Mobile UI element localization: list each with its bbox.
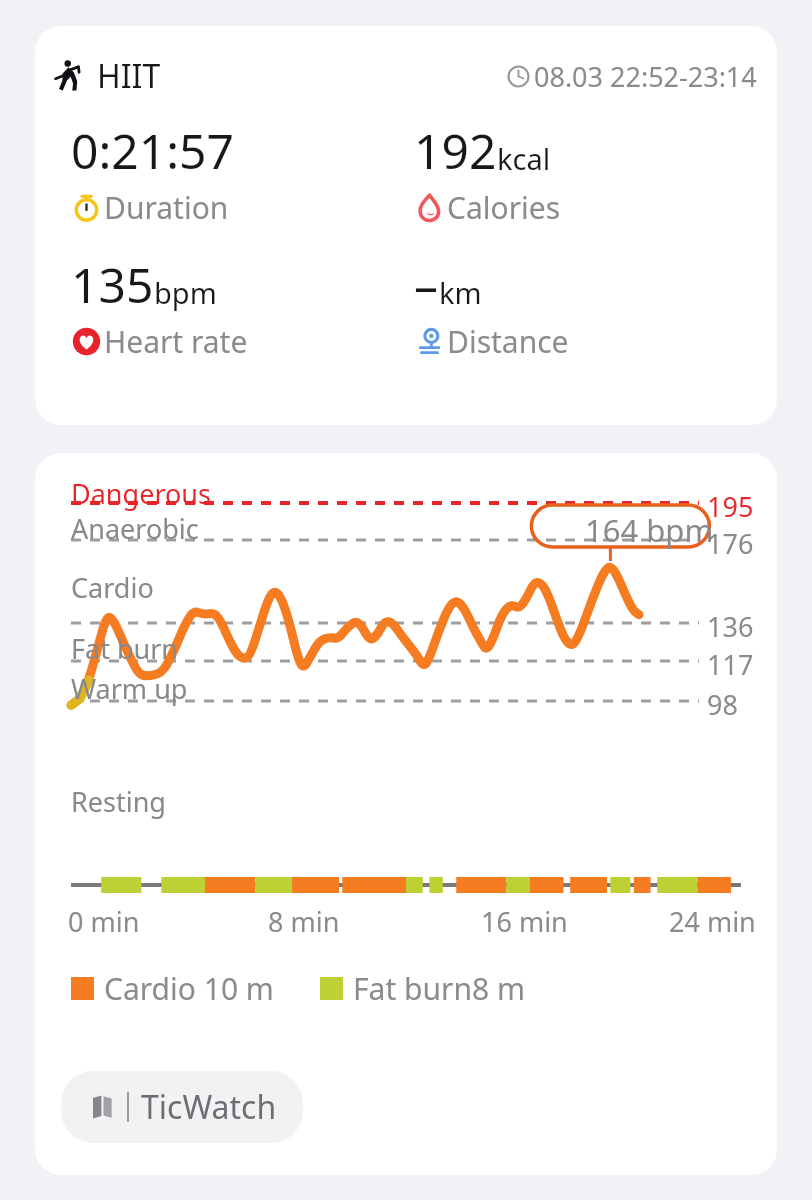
staticText: Calories — [447, 187, 561, 228]
staticText: Warm up — [71, 670, 188, 707]
button[interactable]: TicWatch — [61, 1071, 303, 1143]
staticText: 08.03 22:52-23:14 — [534, 58, 757, 95]
staticText: 16 min — [481, 903, 568, 940]
staticText: 192 — [414, 118, 497, 183]
staticText: 24 min — [669, 903, 756, 940]
other: HIIT workout — [51, 57, 89, 95]
staticText: Duration — [104, 187, 229, 228]
staticText: Distance — [447, 321, 569, 362]
staticText: Fat burn8 m — [353, 968, 525, 1009]
staticText: 164 bpm — [585, 509, 714, 551]
button[interactable]: HIIT workout — [35, 26, 777, 425]
staticText: Cardio — [71, 569, 154, 606]
staticText: bpm — [154, 273, 217, 312]
staticText: 0 min — [68, 903, 140, 940]
staticText: – — [414, 252, 439, 317]
button[interactable]: Dangerous — [35, 453, 777, 1175]
staticText: 117 — [707, 646, 754, 683]
button[interactable]: 0:21:57 — [71, 118, 235, 228]
button[interactable]: 192 — [414, 118, 561, 228]
staticText: kcal — [497, 139, 551, 178]
staticText: 135 — [71, 252, 154, 317]
staticText: Fat burn — [71, 630, 179, 667]
staticText: 98 — [707, 686, 738, 723]
button[interactable]: – — [414, 252, 569, 362]
staticText: HIIT — [97, 54, 161, 98]
staticText: 176 — [707, 525, 754, 562]
staticText: 195 — [707, 488, 754, 525]
button[interactable]: 135 — [71, 252, 248, 362]
staticText: Dangerous — [71, 475, 211, 512]
staticText: Cardio 10 m — [104, 968, 274, 1009]
staticText: Anaerobic — [71, 510, 199, 547]
staticText: Heart rate — [104, 321, 248, 362]
staticText: TicWatch — [141, 1085, 277, 1129]
staticText: 0:21:57 — [71, 118, 235, 183]
staticText: 8 min — [268, 903, 340, 940]
staticText: Resting — [71, 783, 166, 820]
staticText: km — [439, 273, 482, 312]
staticText: 136 — [707, 608, 754, 645]
